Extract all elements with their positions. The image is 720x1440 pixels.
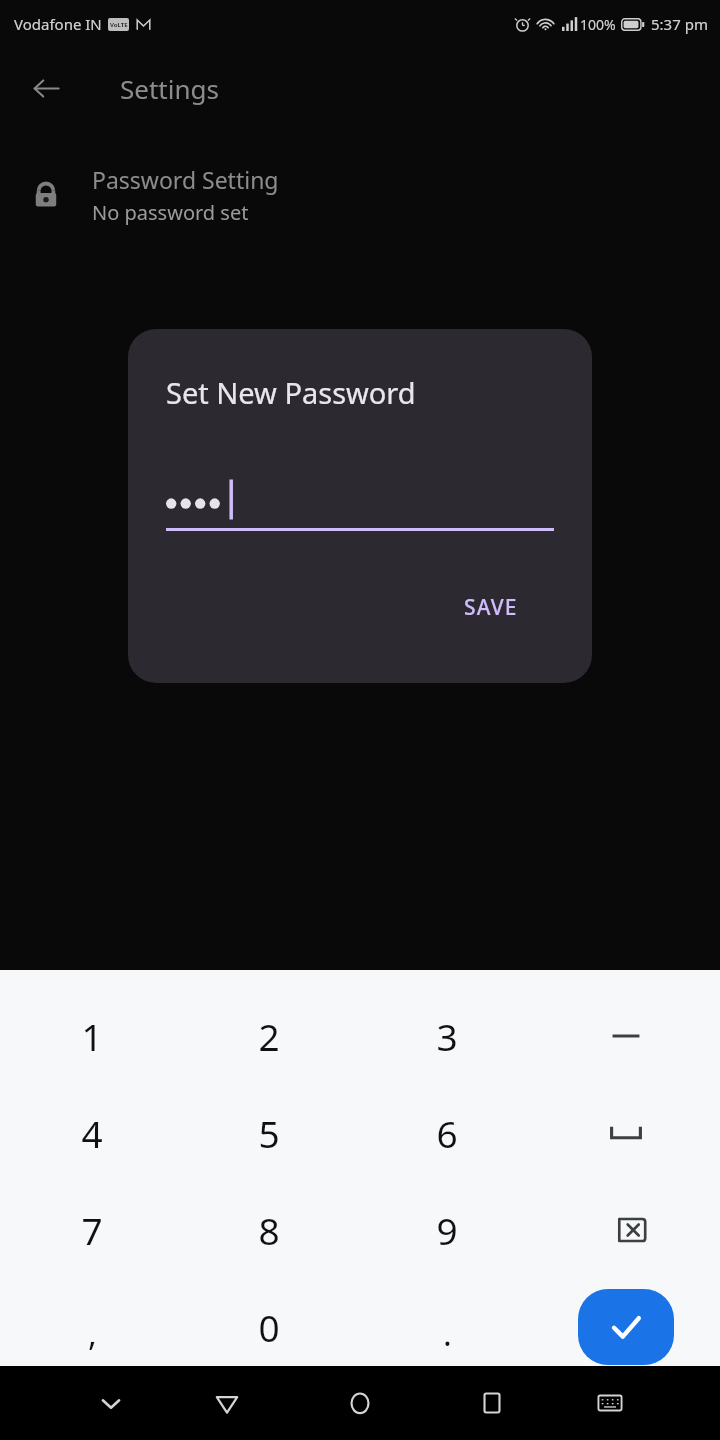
- staticText: Password Setting: [92, 164, 279, 195]
- staticText: No password set: [92, 199, 249, 226]
- button[interactable]: 8: [191, 1182, 347, 1278]
- button[interactable]: 9: [369, 1182, 525, 1278]
- staticText: Set New Password: [166, 373, 416, 412]
- button[interactable]: .: [369, 1285, 525, 1381]
- staticText: 100%: [580, 15, 616, 34]
- staticText: .: [443, 1311, 452, 1356]
- staticText: 9: [436, 1205, 458, 1255]
- staticText: 2: [258, 1011, 280, 1061]
- staticText: 4: [81, 1108, 103, 1158]
- button[interactable]: Enter: [578, 1289, 674, 1365]
- button[interactable]: Switch keyboard: [566, 1366, 654, 1440]
- button[interactable]: 5: [191, 1085, 347, 1181]
- staticText: 8: [258, 1205, 280, 1255]
- staticText: VoLTE: [110, 21, 128, 29]
- staticText: 6: [436, 1108, 458, 1158]
- staticText: 0: [258, 1302, 280, 1352]
- staticText: 5: [258, 1108, 280, 1158]
- staticText: Vodafone IN: [14, 14, 102, 34]
- button[interactable]: 6: [369, 1085, 525, 1181]
- button[interactable]: 0: [191, 1279, 347, 1375]
- button[interactable]: 1: [14, 988, 170, 1084]
- staticText: 5:37 pm: [651, 14, 708, 34]
- staticText: 3: [436, 1011, 458, 1061]
- button[interactable]: Hide keyboard: [67, 1366, 155, 1440]
- button[interactable]: Dash: [566, 988, 686, 1084]
- button[interactable]: Password Setting: [0, 145, 720, 245]
- staticText: 7: [81, 1205, 103, 1255]
- button[interactable]: 2: [191, 988, 347, 1084]
- button[interactable]: ,: [14, 1285, 170, 1381]
- button[interactable]: Home: [316, 1366, 404, 1440]
- staticText: Settings: [120, 71, 219, 106]
- button[interactable]: Back: [183, 1366, 271, 1440]
- staticText: ,: [88, 1311, 97, 1356]
- button[interactable]: 7: [14, 1182, 170, 1278]
- staticText: SAVE: [464, 593, 518, 622]
- button[interactable]: 3: [369, 988, 525, 1084]
- button[interactable]: 4: [14, 1085, 170, 1181]
- button[interactable]: Recents: [448, 1366, 536, 1440]
- button[interactable]: Space: [566, 1085, 686, 1181]
- button[interactable]: Back: [18, 60, 74, 116]
- button[interactable]: SAVE: [446, 581, 536, 634]
- staticText: 1: [81, 1011, 103, 1061]
- button[interactable]: Backspace: [566, 1182, 686, 1278]
